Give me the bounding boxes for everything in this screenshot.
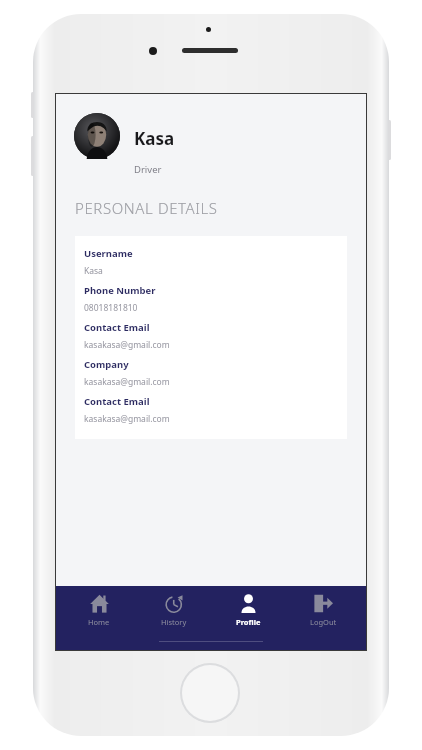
button[interactable]: Profile bbox=[217, 590, 279, 627]
staticText: Kasa bbox=[84, 265, 103, 277]
staticText: Contact Email bbox=[84, 321, 150, 334]
staticText: Phone Number bbox=[84, 284, 156, 297]
button[interactable]: LogOut bbox=[292, 590, 354, 627]
button[interactable]: Username bbox=[75, 236, 347, 439]
staticText: Profile bbox=[236, 617, 261, 627]
staticText: PERSONAL DETAILS bbox=[75, 198, 218, 218]
staticText: Driver bbox=[134, 163, 162, 176]
staticText: History bbox=[161, 617, 187, 627]
staticText: kasakasa@gmail.com bbox=[84, 376, 170, 388]
button[interactable]: History bbox=[143, 590, 205, 627]
staticText: Kasa bbox=[134, 127, 175, 150]
staticText: 08018181810 bbox=[84, 302, 138, 314]
staticText: kasakasa@gmail.com bbox=[84, 339, 170, 351]
button[interactable]: Home bbox=[68, 590, 130, 627]
staticText: LogOut bbox=[310, 617, 337, 627]
staticText: kasakasa@gmail.com bbox=[84, 413, 170, 425]
button[interactable]: Kasa bbox=[56, 94, 366, 198]
staticText: Home bbox=[88, 617, 110, 627]
staticText: Username bbox=[84, 247, 133, 260]
staticText: Contact Email bbox=[84, 395, 150, 408]
staticText: Company bbox=[84, 358, 129, 371]
